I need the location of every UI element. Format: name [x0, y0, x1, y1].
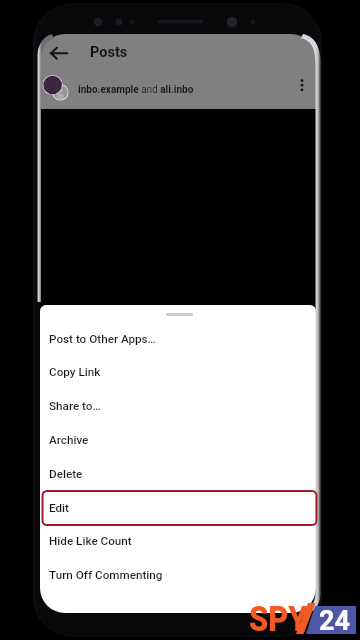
staticText: Copy Link	[49, 365, 101, 379]
button[interactable]: Hide Like Count	[40, 525, 316, 559]
button[interactable]: Back	[46, 41, 72, 67]
button[interactable]: Delete	[40, 458, 316, 492]
button[interactable]: Archive	[40, 424, 316, 458]
button[interactable]: Edit	[40, 492, 316, 526]
staticText: Turn Off Commenting	[49, 568, 163, 582]
staticText: Post to Other Apps…	[49, 332, 156, 346]
staticText: 24	[319, 605, 350, 637]
staticText: Share to…	[49, 399, 101, 413]
button[interactable]: Share to…	[40, 390, 316, 424]
staticText: Archive	[49, 433, 89, 447]
button[interactable]: Post to Other Apps…	[40, 323, 316, 357]
staticText: Hide Like Count	[49, 534, 132, 548]
button[interactable]: More options	[293, 78, 313, 98]
staticText: Edit	[49, 501, 69, 515]
staticText: Posts	[90, 44, 128, 61]
staticText: Delete	[49, 467, 83, 481]
staticText: SPY	[249, 599, 308, 635]
button[interactable]: Turn Off Commenting	[40, 559, 316, 593]
button[interactable]: Copy Link	[40, 356, 316, 390]
staticText: inbo.example and ali.inbo	[78, 84, 194, 96]
